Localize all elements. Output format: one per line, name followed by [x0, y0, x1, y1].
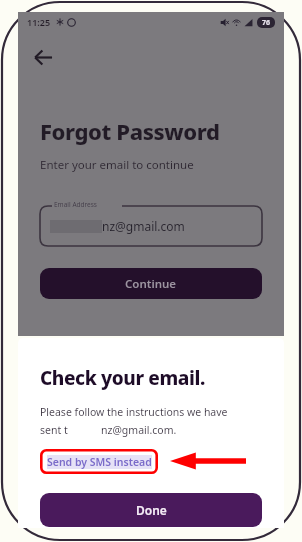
staticText: 76 — [262, 18, 271, 28]
staticText: Please follow the instructions we have — [40, 405, 228, 419]
staticText: Email Address — [54, 200, 97, 209]
button[interactable]: Send by SMS instead — [40, 449, 158, 474]
staticText: 11:25 — [27, 16, 51, 28]
button[interactable]: nz@gmail.com — [40, 206, 262, 246]
staticText: Continue — [125, 276, 177, 292]
button[interactable]: Done — [40, 493, 262, 527]
staticText: nz@gmail.com — [102, 218, 185, 234]
button[interactable]: Back — [24, 38, 62, 76]
staticText: Forgot Password — [40, 116, 220, 146]
staticText: nz@gmail.com. — [101, 423, 177, 437]
staticText: Enter your email to continue — [40, 157, 194, 173]
staticText: sent t — [40, 423, 68, 437]
staticText: Check your email. — [40, 365, 205, 391]
button[interactable]: Continue — [40, 268, 262, 299]
staticText: Done — [136, 502, 167, 518]
staticText: Send by SMS instead — [47, 455, 152, 469]
